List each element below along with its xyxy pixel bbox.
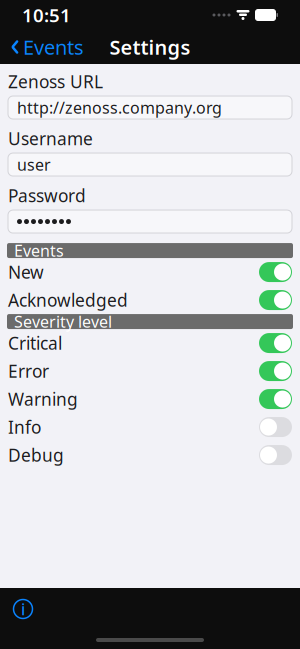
staticText: Events (23, 34, 84, 60)
button[interactable]: Error (0, 357, 300, 385)
staticText: 10:51 (22, 3, 71, 27)
staticText: New (8, 260, 44, 283)
staticText: Warning (8, 387, 78, 410)
staticText: Acknowledged (8, 288, 128, 311)
staticText: Info (8, 415, 41, 438)
staticText: Error (8, 359, 49, 382)
staticText: Debug (8, 443, 64, 466)
staticText: Events (14, 240, 64, 261)
button[interactable]: Critical (0, 329, 300, 357)
staticText: Severity level (14, 311, 112, 332)
staticText: Settings (109, 34, 190, 60)
staticText: Zenoss URL (8, 70, 103, 93)
staticText: Username (8, 127, 93, 150)
button[interactable]: Info (0, 413, 300, 441)
staticText: i (21, 598, 25, 620)
button[interactable]: Debug (0, 441, 300, 469)
staticText: http://zenoss.company.org (17, 97, 222, 118)
button[interactable]: Info (6, 592, 40, 626)
button[interactable]: Warning (0, 385, 300, 413)
staticText: Critical (8, 331, 62, 354)
button[interactable]: New (0, 258, 300, 286)
staticText: user (17, 154, 51, 175)
button[interactable]: Acknowledged (0, 286, 300, 314)
staticText: Password (8, 184, 86, 207)
button[interactable]: Events (2, 28, 92, 66)
